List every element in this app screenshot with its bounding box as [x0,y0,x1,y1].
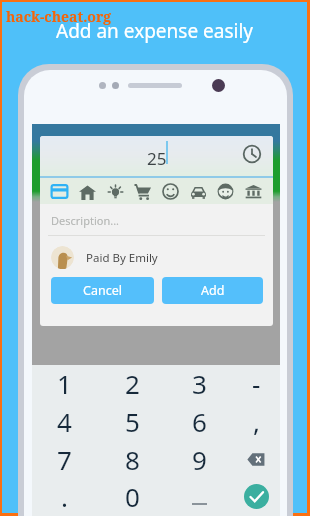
button[interactable]: Description... [40,204,273,235]
button[interactable]: Kids category [212,178,239,204]
button[interactable]: Groceries category [129,178,156,204]
staticText: 4 [57,404,72,439]
staticText: Add [201,282,225,299]
staticText: 8 [125,442,140,477]
button[interactable]: 7 [34,440,94,478]
staticText: 3 [192,366,207,401]
button[interactable]: 4 [34,402,94,440]
other: Confirm [244,484,269,509]
button[interactable]: Payment category [46,178,73,204]
staticText: Cancel [83,282,122,299]
button[interactable]: Pick time [242,144,262,164]
button[interactable]: Confirm [226,477,286,515]
staticText: 7 [57,442,72,477]
staticText: 1 [57,366,72,401]
staticText: - [252,366,261,401]
button[interactable]: Transport category [185,178,212,204]
staticText: 0 [125,479,140,514]
staticText: 2 [125,366,140,401]
button[interactable]: Fun category [157,178,184,204]
staticText: 9 [192,442,207,477]
other: Backspace [247,453,265,466]
staticText: 5 [125,404,140,439]
button[interactable]: 3 [169,364,229,402]
staticText: Paid By Emily [86,250,158,266]
button[interactable]: , [226,402,286,440]
button[interactable]: . [34,477,94,515]
button[interactable]: Utilities category [102,178,129,204]
button[interactable]: 6 [169,402,229,440]
staticText: 6 [192,404,207,439]
button[interactable]: - [226,364,286,402]
button[interactable]: 0 [102,477,162,515]
button[interactable]: 1 [34,364,94,402]
button[interactable] [169,477,229,515]
button[interactable]: 5 [102,402,162,440]
staticText: . [61,479,68,514]
button[interactable]: Add [162,277,263,304]
staticText: Description... [51,213,120,228]
staticText: , [253,404,260,439]
button[interactable]: Bank category [240,178,267,204]
button[interactable]: 2 [102,364,162,402]
button[interactable]: Backspace [226,440,286,478]
staticText: Add an expense easily [56,18,254,44]
staticText: hack-cheat.org [6,7,112,26]
button[interactable]: Paid By Emily [40,236,273,274]
staticText: 25 [147,147,167,170]
button[interactable]: 8 [102,440,162,478]
button[interactable]: Home category [74,178,101,204]
button[interactable]: Cancel [51,277,154,304]
button[interactable]: 9 [169,440,229,478]
